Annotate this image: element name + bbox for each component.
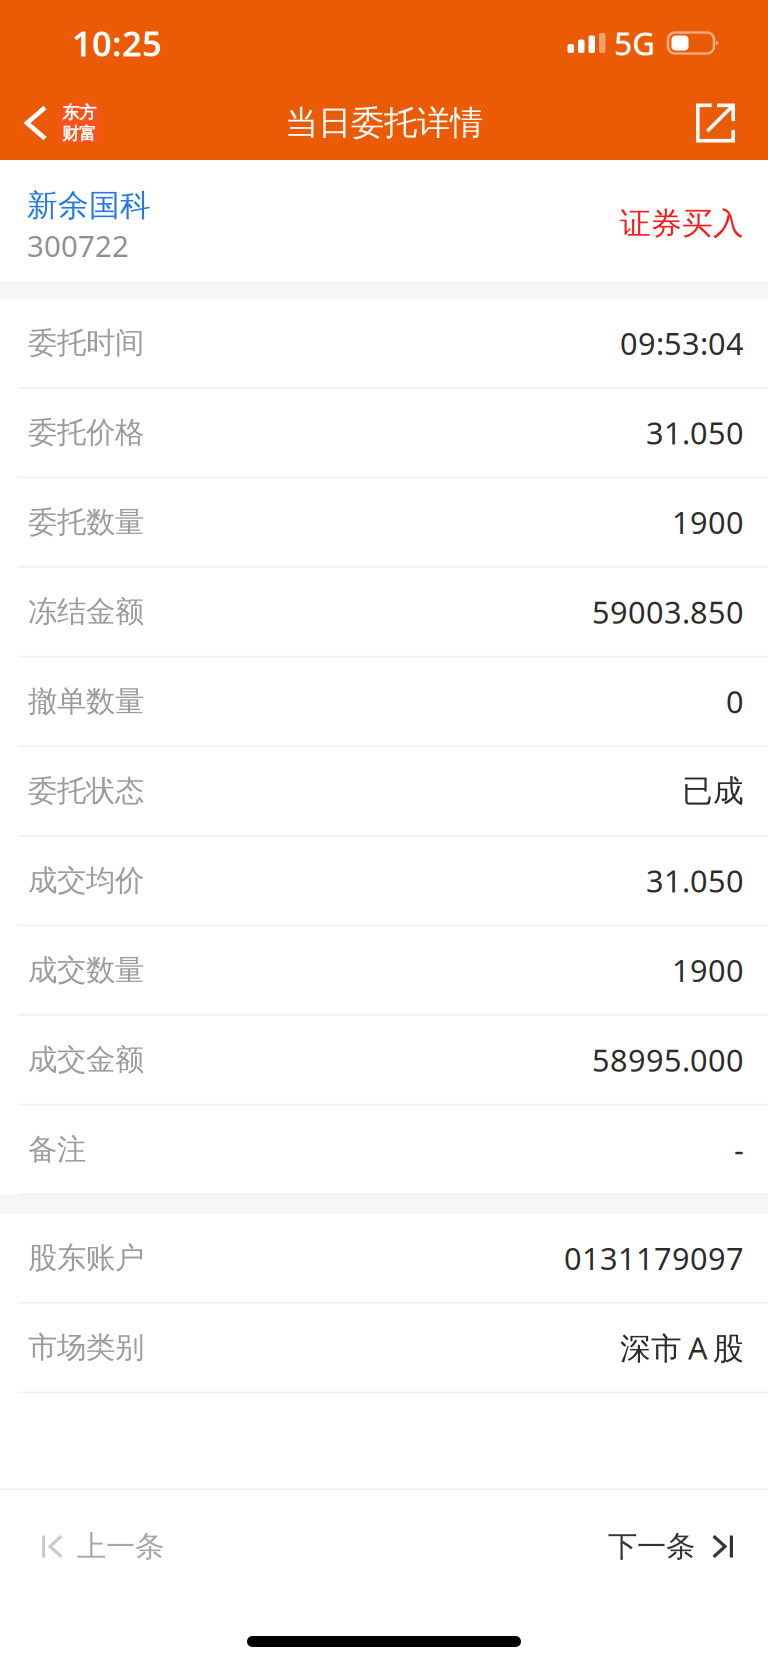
staticText: 1900 <box>672 502 744 542</box>
staticText: 已成 <box>682 772 744 810</box>
staticText: 31.050 <box>646 412 744 453</box>
staticText: 深市 A 股 <box>620 1327 744 1368</box>
staticText: 31.050 <box>646 860 744 901</box>
button[interactable]: 上一条 <box>0 1490 194 1590</box>
staticText: 委托价格 <box>28 415 144 451</box>
button[interactable]: 分享 <box>672 86 768 160</box>
staticText: 58995.000 <box>592 1039 744 1080</box>
button[interactable]: 下一条 <box>578 1490 768 1590</box>
staticText: 市场类别 <box>28 1330 144 1366</box>
staticText: 59003.850 <box>592 591 744 632</box>
staticText: 股东账户 <box>28 1240 144 1276</box>
button[interactable]: 返回 <box>0 86 114 160</box>
staticText: 委托状态 <box>28 773 144 809</box>
staticText: 财富 <box>62 123 96 144</box>
staticText: 撤单数量 <box>28 683 144 719</box>
staticText: 成交数量 <box>28 952 144 988</box>
staticText: 证券买入 <box>620 205 744 242</box>
staticText: 5G <box>614 22 655 64</box>
staticText: 300722 <box>27 226 129 265</box>
staticText: 0131179097 <box>564 1238 744 1278</box>
staticText: 1900 <box>672 950 744 990</box>
staticText: 成交均价 <box>28 863 144 899</box>
staticText: 0 <box>726 681 744 722</box>
staticText: 委托数量 <box>28 504 144 540</box>
staticText: 委托时间 <box>28 325 144 361</box>
staticText: - <box>734 1129 744 1170</box>
staticText: 东方 <box>62 102 96 123</box>
staticText: 冻结金额 <box>28 594 144 630</box>
staticText: 备注 <box>28 1131 86 1167</box>
staticText: 当日委托详情 <box>285 102 483 143</box>
staticText: 上一条 <box>77 1528 164 1564</box>
staticText: 成交金额 <box>28 1042 144 1078</box>
staticText: 新余国科 <box>27 187 151 224</box>
staticText: 下一条 <box>608 1528 695 1564</box>
staticText: 09:53:04 <box>620 323 744 363</box>
staticText: 10:25 <box>72 20 162 66</box>
